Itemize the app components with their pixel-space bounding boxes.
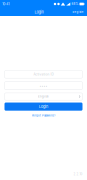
staticText: 68% xyxy=(71,2,78,6)
button[interactable]: Forgot Password? xyxy=(32,113,55,117)
button[interactable]: English xyxy=(0,93,87,100)
staticText: •••• xyxy=(39,84,47,88)
staticText: Register xyxy=(72,10,84,14)
staticText: 10:41 xyxy=(2,2,9,6)
staticText: Forgot Password? xyxy=(32,114,55,117)
staticText: 2.2.10 xyxy=(73,172,82,176)
button[interactable]: Register xyxy=(70,8,87,16)
staticText: Login xyxy=(34,10,43,14)
staticText: Activation ID xyxy=(33,72,53,76)
staticText: Login xyxy=(39,104,48,109)
staticText: English xyxy=(38,95,49,98)
button[interactable]: Login xyxy=(0,102,87,111)
